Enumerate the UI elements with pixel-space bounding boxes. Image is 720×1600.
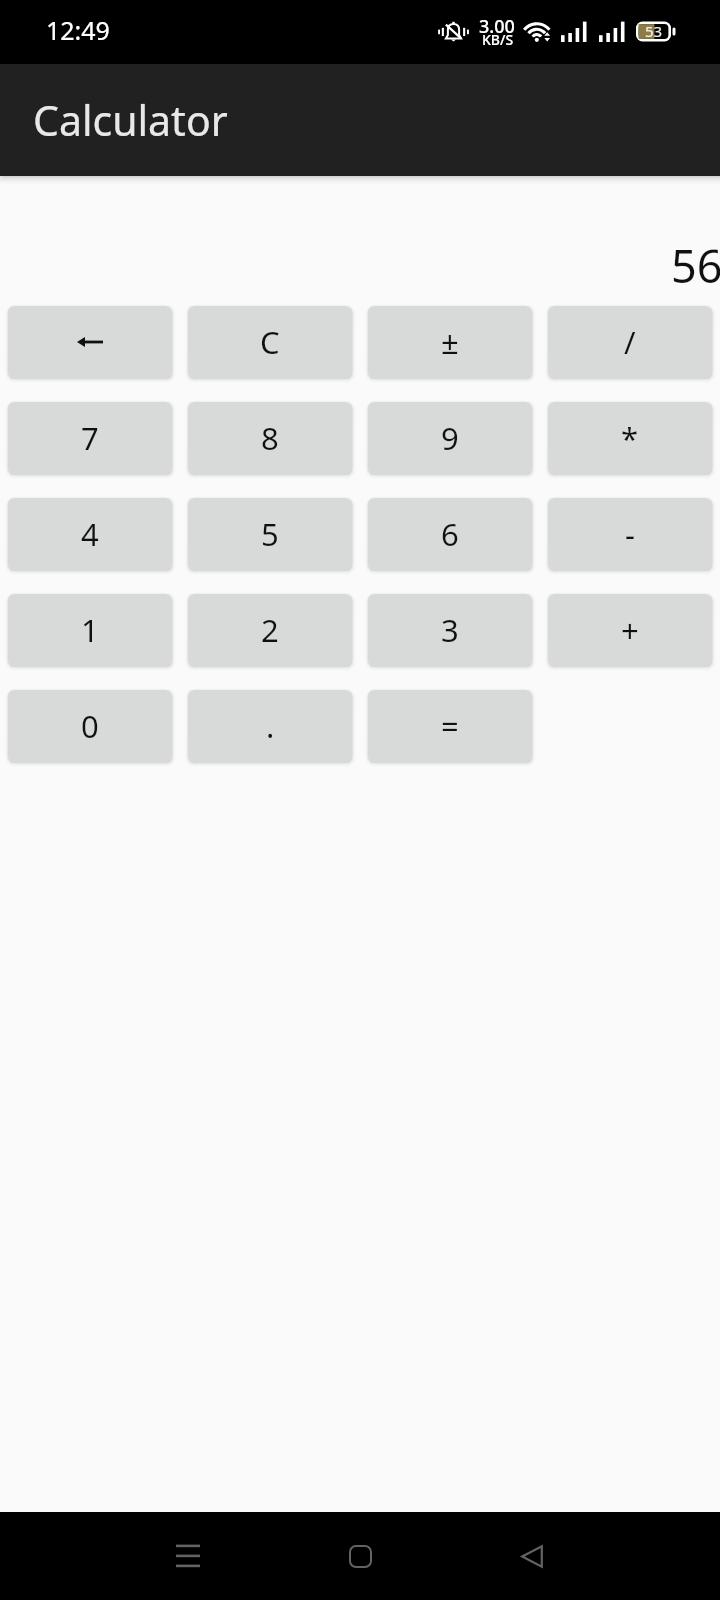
button[interactable]: ± bbox=[368, 306, 532, 378]
staticText: . bbox=[266, 705, 275, 747]
staticText: 8 bbox=[261, 417, 279, 459]
staticText: KB/S bbox=[482, 30, 514, 49]
button[interactable]: 2 bbox=[188, 594, 352, 666]
staticText: 3.00 bbox=[479, 14, 515, 39]
button[interactable]: / bbox=[548, 306, 712, 378]
button[interactable]: 0 bbox=[8, 690, 172, 762]
button[interactable]: Backspace bbox=[8, 306, 172, 378]
staticText: 2 bbox=[261, 609, 279, 651]
staticText: 5 bbox=[261, 513, 279, 555]
button[interactable]: = bbox=[368, 690, 532, 762]
staticText: ± bbox=[441, 321, 459, 363]
staticText: 7 bbox=[81, 417, 99, 459]
staticText: 0 bbox=[81, 705, 99, 747]
staticText: 3 bbox=[441, 609, 459, 651]
button[interactable]: 8 bbox=[188, 402, 352, 474]
staticText: 6 bbox=[441, 513, 459, 555]
button[interactable]: Recent apps bbox=[144, 1512, 232, 1600]
button[interactable]: 4 bbox=[8, 498, 172, 570]
staticText: 4 bbox=[81, 513, 99, 555]
staticText: + bbox=[621, 609, 639, 651]
button[interactable]: C bbox=[188, 306, 352, 378]
staticText: 12:49 bbox=[46, 13, 110, 47]
staticText: 53 bbox=[636, 21, 671, 41]
staticText: * bbox=[621, 417, 639, 459]
staticText: / bbox=[624, 321, 636, 363]
button[interactable]: 6 bbox=[368, 498, 532, 570]
button[interactable]: * bbox=[548, 402, 712, 474]
button[interactable]: Home bbox=[316, 1512, 404, 1600]
button[interactable]: 3 bbox=[368, 594, 532, 666]
button[interactable]: + bbox=[548, 594, 712, 666]
staticText: = bbox=[441, 705, 459, 747]
button[interactable]: 5 bbox=[188, 498, 352, 570]
button[interactable]: 9 bbox=[368, 402, 532, 474]
staticText: - bbox=[625, 513, 635, 555]
staticText: 1 bbox=[81, 609, 99, 651]
button[interactable]: 1 bbox=[8, 594, 172, 666]
button[interactable]: 7 bbox=[8, 402, 172, 474]
button[interactable]: - bbox=[548, 498, 712, 570]
button[interactable]: . bbox=[188, 690, 352, 762]
staticText: C bbox=[260, 321, 280, 363]
staticText: 56 bbox=[671, 235, 720, 296]
staticText: 9 bbox=[441, 417, 459, 459]
button[interactable]: Back bbox=[488, 1512, 576, 1600]
staticText: Calculator bbox=[33, 92, 228, 148]
